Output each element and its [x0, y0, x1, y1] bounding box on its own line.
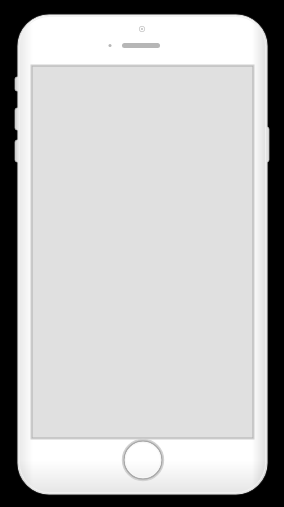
- button[interactable]: iPhone device illustration: [0, 0, 284, 507]
